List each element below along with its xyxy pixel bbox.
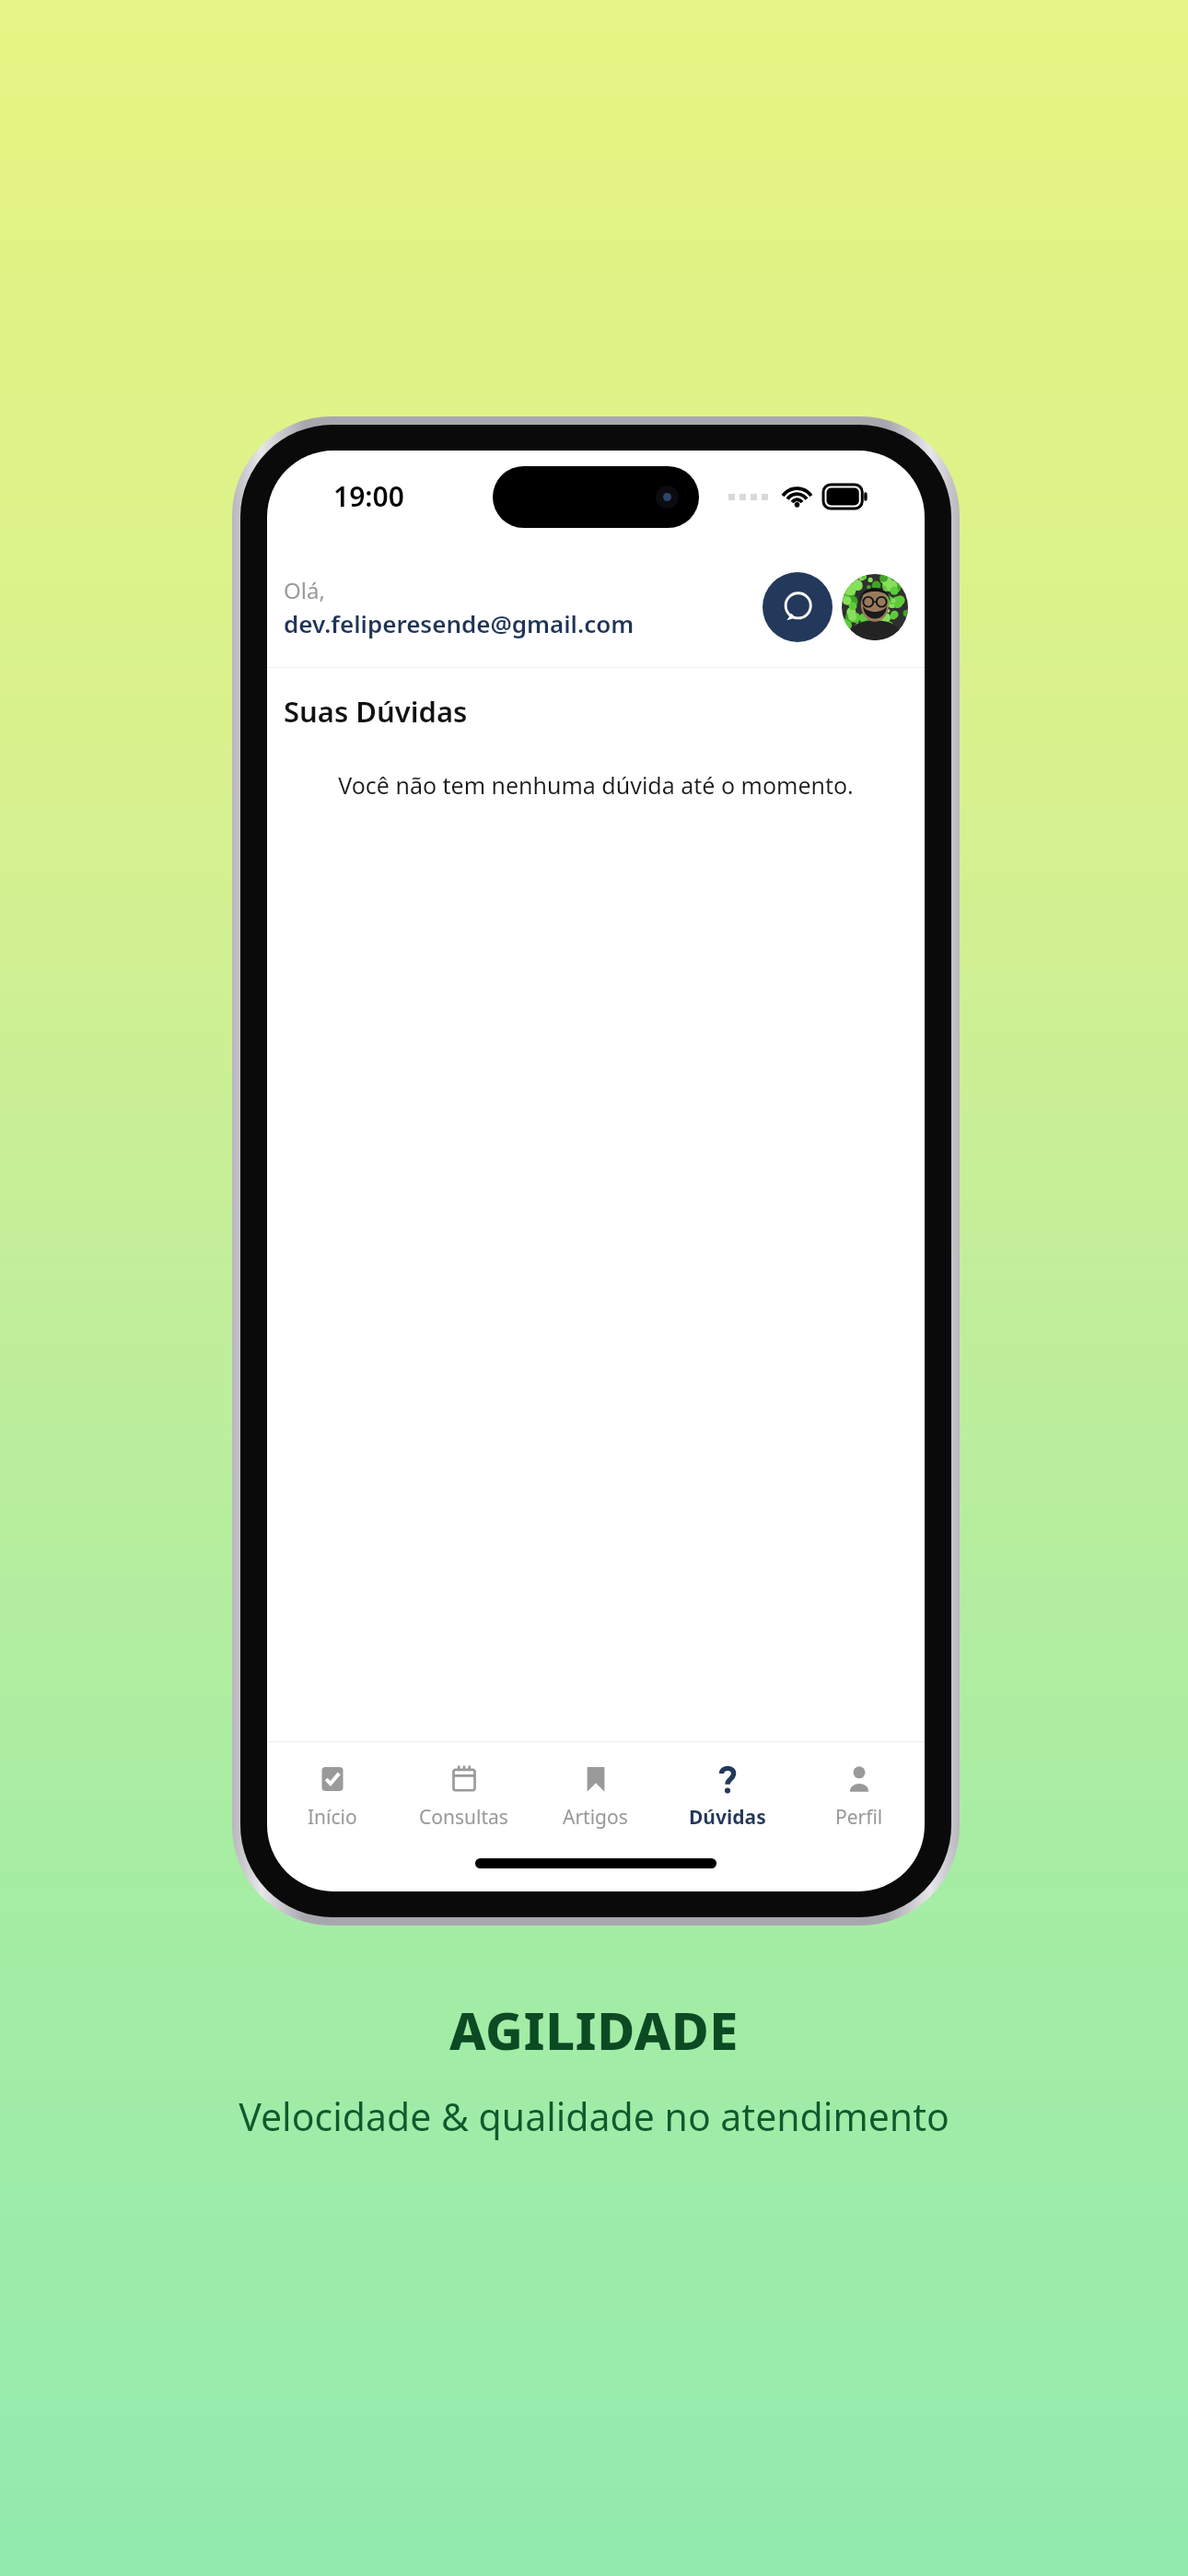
button[interactable]: Dúvidas [661, 1742, 793, 1851]
staticText: AGILIDADE [449, 1995, 739, 2065]
button[interactable]: Início [267, 1742, 398, 1851]
staticText: Perfil [835, 1804, 883, 1831]
button[interactable]: Perfil [793, 1742, 925, 1851]
button[interactable]: Artigos [530, 1742, 661, 1851]
staticText: Suas Dúvidas [284, 692, 468, 731]
staticText: dev.feliperesende@gmail.com [284, 607, 635, 639]
staticText: Início [308, 1804, 357, 1831]
button[interactable]: Mensagens [763, 572, 833, 642]
staticText: Olá, [284, 575, 325, 605]
button[interactable]: Perfil do usuário [842, 574, 908, 640]
button[interactable]: Consultas [398, 1742, 530, 1851]
staticText: Você não tem nenhuma dúvida até o moment… [267, 769, 925, 801]
staticText: Dúvidas [689, 1804, 766, 1831]
staticText: 19:00 [333, 477, 404, 515]
staticText: Velocidade & qualidade no atendimento [239, 2090, 949, 2142]
staticText: Artigos [563, 1804, 628, 1831]
staticText: Consultas [419, 1804, 508, 1831]
